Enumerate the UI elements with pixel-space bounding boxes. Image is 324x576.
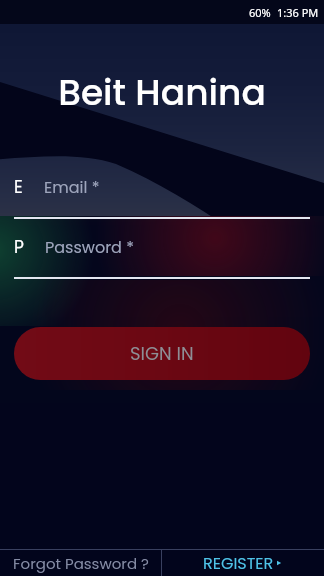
- staticText: 1:36 PM: [277, 5, 319, 20]
- staticText: Forgot Password ?: [13, 553, 149, 574]
- staticText: REGISTER: [203, 552, 274, 574]
- staticText: Beit Hanina: [0, 67, 324, 117]
- staticText: SIGN IN: [130, 341, 194, 366]
- staticText: Password *: [45, 236, 134, 258]
- button[interactable]: SIGN IN: [14, 327, 310, 380]
- staticText: 60%: [249, 5, 271, 20]
- button[interactable]: REGISTER: [162, 550, 324, 576]
- button[interactable]: Forgot Password ?: [0, 550, 161, 576]
- staticText: Email *: [44, 176, 100, 198]
- staticText: E: [14, 175, 23, 199]
- staticText: P: [14, 235, 24, 259]
